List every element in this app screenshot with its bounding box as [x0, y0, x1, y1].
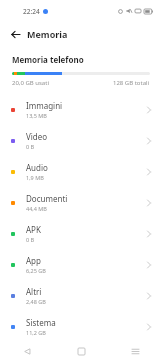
staticText: 1,9 MB — [26, 174, 44, 181]
staticText: 128 GB totali — [113, 79, 150, 87]
staticText: Video — [26, 131, 48, 142]
staticText: 0 B — [26, 236, 35, 243]
staticText: 6,25 GB — [26, 267, 46, 274]
button[interactable]: Audio — [0, 156, 162, 187]
staticText: Documenti — [26, 193, 68, 204]
button[interactable]: Back — [7, 26, 23, 42]
staticText: Altri — [26, 286, 42, 297]
staticText: Memoria — [27, 28, 68, 40]
staticText: Audio — [26, 162, 48, 173]
staticText: 2,48 GB — [26, 298, 46, 305]
staticText: 20,0 GB usati — [12, 79, 49, 87]
button[interactable]: Documenti — [0, 187, 162, 218]
button[interactable]: Video — [0, 125, 162, 156]
button[interactable]: Recents — [124, 342, 146, 360]
button[interactable]: Home — [70, 342, 92, 360]
staticText: 44,4 MB — [26, 205, 47, 212]
staticText: 0 B — [26, 143, 35, 150]
button[interactable]: APK — [0, 218, 162, 249]
staticText: 11,2 GB — [26, 329, 46, 336]
staticText: App — [26, 255, 41, 266]
staticText: Memoria telefono — [12, 54, 84, 65]
button[interactable]: App — [0, 249, 162, 280]
button[interactable]: Sistema — [0, 311, 162, 342]
staticText: APK — [26, 224, 41, 235]
staticText: 22:24 — [23, 7, 40, 16]
button[interactable]: Back — [16, 342, 38, 360]
staticText: Immagini — [26, 100, 63, 111]
button[interactable]: Altri — [0, 280, 162, 311]
staticText: 13,5 MB — [26, 112, 47, 119]
button[interactable]: Immagini — [0, 94, 162, 125]
staticText: Sistema — [26, 317, 56, 328]
